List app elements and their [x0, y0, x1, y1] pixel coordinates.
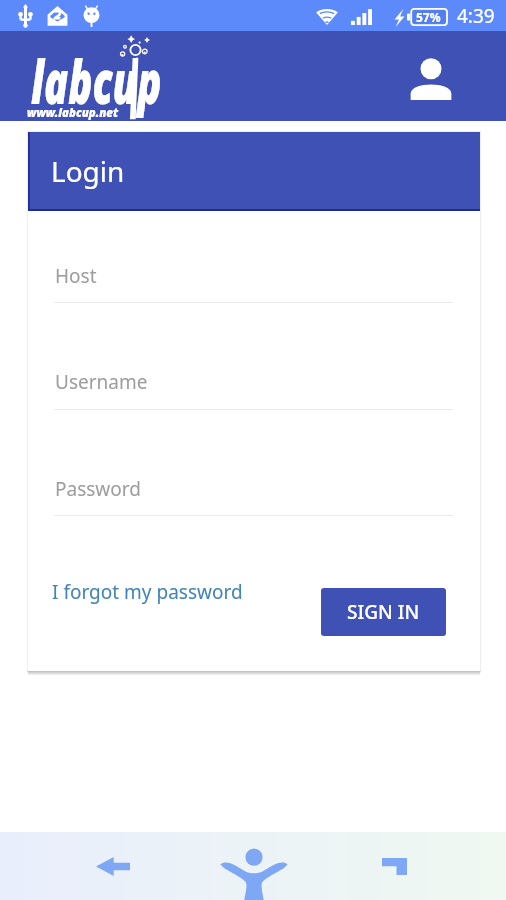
button[interactable]: Account — [400, 50, 462, 108]
staticText: SIGN IN — [347, 599, 420, 625]
staticText: Username — [55, 369, 148, 395]
staticText: 4:39 — [457, 3, 495, 29]
staticText: Host — [55, 263, 97, 289]
staticText: Login — [51, 152, 125, 190]
staticText: Password — [55, 476, 141, 502]
button[interactable]: Home — [210, 836, 298, 900]
staticText: labcup — [31, 40, 162, 122]
staticText: 57% — [416, 9, 441, 25]
button[interactable]: I forgot my password — [52, 579, 243, 605]
button[interactable]: Recent apps — [360, 840, 428, 892]
button[interactable]: Back — [79, 840, 147, 892]
button[interactable]: SIGN IN — [321, 588, 446, 636]
staticText: www.labcup.net — [27, 103, 118, 121]
